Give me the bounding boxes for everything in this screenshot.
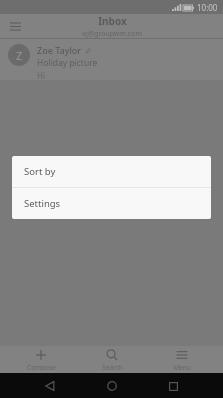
- staticText: Sort by: [24, 165, 56, 178]
- button[interactable]: Home: [100, 374, 124, 398]
- button[interactable]: Z: [0, 39, 223, 80]
- staticText: 10:00: [197, 2, 218, 13]
- button[interactable]: Navigation menu: [6, 17, 24, 35]
- button[interactable]: Recent apps: [161, 374, 185, 398]
- staticText: Holiday picture: [37, 57, 98, 69]
- staticText: Compose: [27, 363, 56, 370]
- staticText: Inbox: [98, 14, 127, 28]
- button[interactable]: Menu: [152, 346, 212, 373]
- staticText: Menu: [173, 363, 191, 370]
- staticText: Settings: [24, 197, 61, 210]
- button[interactable]: Search: [82, 346, 142, 373]
- staticText: Zoe Taylor: [37, 44, 82, 56]
- staticText: Search: [102, 363, 123, 370]
- staticText: Hi: [37, 70, 45, 80]
- button[interactable]: Compose: [11, 346, 71, 373]
- button[interactable]: Settings: [12, 188, 211, 219]
- button[interactable]: Back: [38, 374, 62, 398]
- button[interactable]: Sort by: [12, 156, 211, 187]
- staticText: aj@groupwm.com: [82, 29, 142, 38]
- staticText: Z: [16, 48, 23, 63]
